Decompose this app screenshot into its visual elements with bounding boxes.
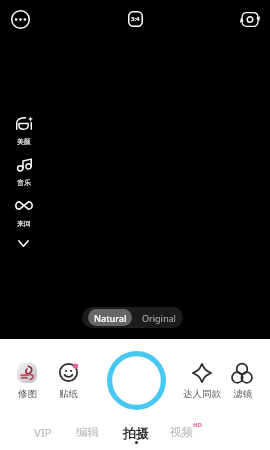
button[interactable]: Aspect ratio 3 to 4 (119, 3, 151, 35)
staticText: 达人同款 (183, 388, 221, 400)
staticText: 拍摄 (123, 425, 149, 441)
staticText: 滤镜 (233, 388, 252, 400)
button[interactable]: Original (138, 309, 180, 326)
button[interactable]: Switch camera (233, 3, 266, 36)
button[interactable]: 来回 (4, 196, 44, 228)
staticText: 编辑 (76, 425, 99, 439)
staticText: Original (142, 312, 176, 324)
button[interactable]: Show more options (10, 230, 37, 257)
button[interactable]: Shutter (104, 348, 168, 412)
staticText: 贴纸 (59, 388, 78, 400)
button[interactable]: VIP (13, 425, 73, 441)
staticText: 3:4 (131, 15, 140, 23)
button[interactable]: 视频 (156, 425, 216, 439)
staticText: 音乐 (17, 178, 31, 187)
staticText: Natural (94, 312, 127, 324)
staticText: 美颜 (17, 137, 31, 146)
staticText: 来回 (17, 219, 31, 228)
staticText: 修图 (18, 388, 37, 400)
button[interactable]: 滤镜 (216, 362, 268, 400)
staticText: HD (193, 421, 202, 429)
button[interactable]: 拍摄 (106, 425, 166, 444)
button[interactable]: 达人同款 (176, 362, 228, 400)
staticText: VIP (34, 425, 52, 441)
button[interactable]: 修图 (1, 362, 53, 400)
button[interactable]: 贴纸 (42, 362, 94, 400)
button[interactable]: 美颜 (4, 112, 44, 146)
button[interactable]: Natural (88, 309, 132, 326)
staticText: 视频 (170, 425, 193, 439)
button[interactable]: 编辑 (57, 425, 117, 439)
button[interactable]: More options (4, 3, 37, 36)
button[interactable]: 音乐 (4, 153, 44, 187)
